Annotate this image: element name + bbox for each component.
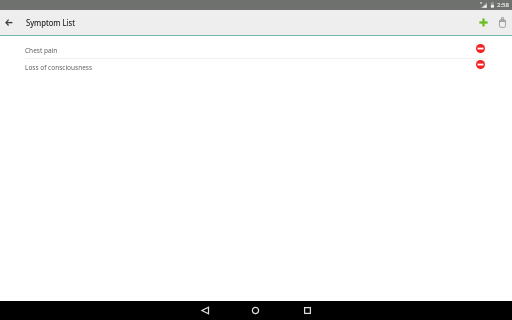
button[interactable]: Navigate up — [2, 15, 16, 29]
staticText: Symptom List — [26, 17, 75, 29]
button[interactable]: Delete — [495, 15, 510, 30]
button[interactable]: Remove symptom — [472, 44, 489, 53]
staticText: 2:58 — [497, 1, 509, 9]
staticText: Chest pain — [25, 46, 58, 55]
staticText: Symptom List — [26, 17, 75, 29]
button[interactable]: Remove symptom — [472, 60, 489, 69]
button[interactable]: Chest pain — [0, 36, 512, 58]
staticText: Loss of consciousness — [25, 63, 93, 72]
button[interactable]: Home — [245, 301, 266, 320]
button[interactable]: Loss of consciousness — [0, 58, 512, 79]
button[interactable]: Back — [195, 301, 216, 320]
button[interactable]: Recent apps — [297, 301, 318, 320]
button[interactable]: Add symptom — [476, 15, 491, 30]
